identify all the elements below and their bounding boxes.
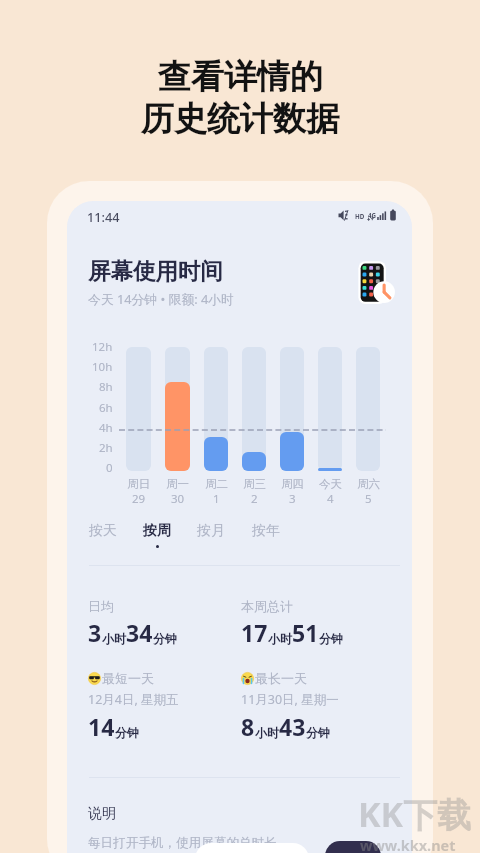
- staticText: 3: [88, 617, 102, 648]
- staticText: 2h: [99, 440, 113, 456]
- staticText: 14: [88, 711, 115, 742]
- staticText: 周日: [127, 477, 150, 491]
- staticText: 日均: [88, 598, 114, 614]
- staticText: 8: [241, 711, 255, 742]
- staticText: 周一: [166, 477, 189, 491]
- staticText: 小时: [102, 631, 126, 646]
- staticText: 周四: [281, 477, 304, 491]
- staticText: 最长一天: [255, 670, 307, 686]
- staticText: 周六: [357, 477, 380, 491]
- button[interactable]: [126, 347, 151, 471]
- staticText: 2: [251, 491, 258, 507]
- button[interactable]: 按年: [243, 517, 289, 550]
- staticText: 最短一天: [102, 670, 154, 686]
- staticText: 屏幕使用时间: [88, 257, 223, 285]
- staticText: 今天: [319, 477, 342, 491]
- button[interactable]: 日均: [88, 598, 238, 648]
- staticText: 历史统计数据: [141, 98, 339, 140]
- button[interactable]: 按月: [188, 517, 234, 550]
- staticText: 5: [365, 491, 372, 507]
- button[interactable]: [356, 347, 380, 471]
- staticText: 6h: [99, 400, 113, 416]
- button[interactable]: 最长一天: [241, 670, 391, 742]
- staticText: 说明: [88, 805, 116, 823]
- staticText: 34: [126, 617, 153, 648]
- staticText: 10h: [92, 359, 113, 375]
- staticText: 51: [292, 617, 319, 648]
- staticText: 30: [171, 491, 185, 507]
- button[interactable]: 按天: [80, 517, 126, 550]
- staticText: 分钟: [306, 725, 330, 740]
- staticText: 按月: [197, 522, 225, 540]
- staticText: 43: [279, 711, 306, 742]
- button[interactable]: [165, 347, 190, 471]
- staticText: 11:44: [87, 208, 120, 225]
- staticText: 分钟: [115, 725, 139, 740]
- staticText: 小时: [255, 725, 279, 740]
- staticText: 查看详情的: [158, 56, 323, 98]
- button[interactable]: [204, 347, 228, 471]
- staticText: 按年: [252, 522, 280, 540]
- button[interactable]: [242, 347, 266, 471]
- staticText: 4G: [368, 211, 377, 219]
- staticText: 分钟: [319, 631, 343, 646]
- staticText: 1: [213, 491, 220, 507]
- staticText: 分钟: [153, 631, 177, 646]
- button[interactable]: 按周: [134, 517, 180, 553]
- staticText: 3: [289, 491, 296, 507]
- staticText: 按天: [89, 522, 117, 540]
- staticText: 4h: [99, 420, 113, 436]
- staticText: 17: [241, 617, 268, 648]
- staticText: 29: [132, 491, 146, 507]
- button[interactable]: [280, 347, 304, 471]
- staticText: KK下载: [358, 791, 472, 837]
- staticText: 11月30日, 星期一: [241, 691, 339, 708]
- staticText: HD: [355, 212, 365, 220]
- staticText: 周三: [243, 477, 266, 491]
- staticText: 8h: [99, 379, 113, 395]
- button[interactable]: Screen time app icon: [354, 256, 400, 302]
- staticText: 0: [106, 460, 113, 476]
- staticText: 本周总计: [241, 598, 293, 614]
- staticText: 12月4日, 星期五: [88, 691, 179, 708]
- button[interactable]: 最短一天: [88, 670, 238, 742]
- staticText: www.kkx.net: [360, 835, 456, 853]
- button[interactable]: 本周总计: [241, 598, 391, 648]
- staticText: 按周: [143, 522, 171, 540]
- staticText: 今天 14分钟 • 限额: 4小时: [88, 290, 234, 307]
- staticText: 小时: [268, 631, 292, 646]
- staticText: 4: [327, 491, 334, 507]
- staticText: 12h: [92, 339, 113, 355]
- staticText: 每日打开手机，使用屏幕的总时长: [88, 835, 277, 851]
- staticText: 周二: [205, 477, 228, 491]
- button[interactable]: [318, 347, 342, 471]
